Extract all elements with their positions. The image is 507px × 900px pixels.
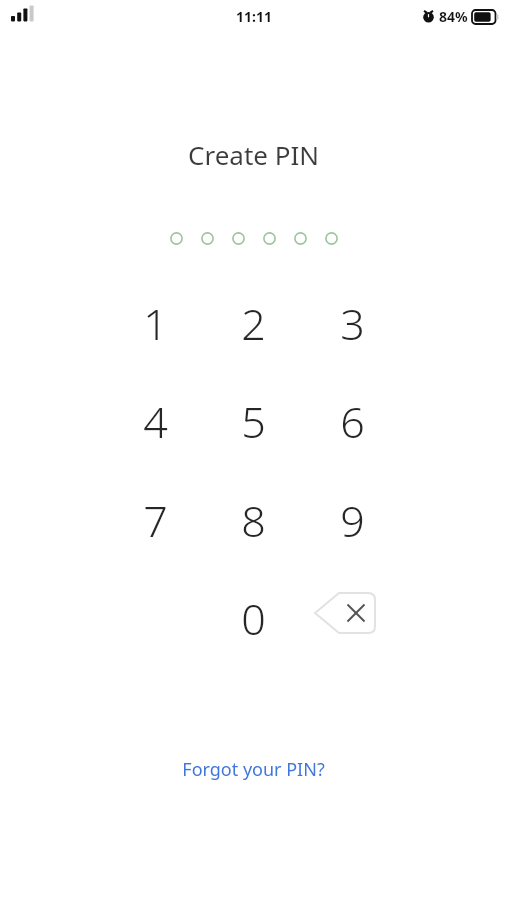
button[interactable]: 9 [313,491,391,537]
staticText: 11:11 [236,7,272,26]
staticText: 0 [241,589,266,635]
staticText: 4 [143,392,168,438]
staticText: 5 [241,392,266,438]
staticText: 9 [340,491,365,537]
staticText: 8 [241,491,266,537]
button[interactable]: 5 [214,392,292,438]
staticText: 1 [143,294,168,340]
button[interactable]: Forgot your PIN? [170,752,337,787]
button[interactable]: 7 [116,491,194,537]
button[interactable]: Backspace [309,590,381,636]
staticText: 84% [439,7,468,26]
staticText: Create PIN [0,137,507,172]
button[interactable]: 0 [214,589,292,635]
button[interactable]: 1 [116,294,194,340]
staticText: Forgot your PIN? [182,757,325,782]
button[interactable]: 3 [313,294,391,340]
button[interactable]: 4 [116,392,194,438]
staticText: 6 [340,392,365,438]
button[interactable]: 6 [313,392,391,438]
staticText: 2 [241,294,266,340]
button[interactable]: 8 [214,491,292,537]
button[interactable]: 2 [214,294,292,340]
staticText: 7 [143,491,168,537]
staticText: 3 [340,294,365,340]
